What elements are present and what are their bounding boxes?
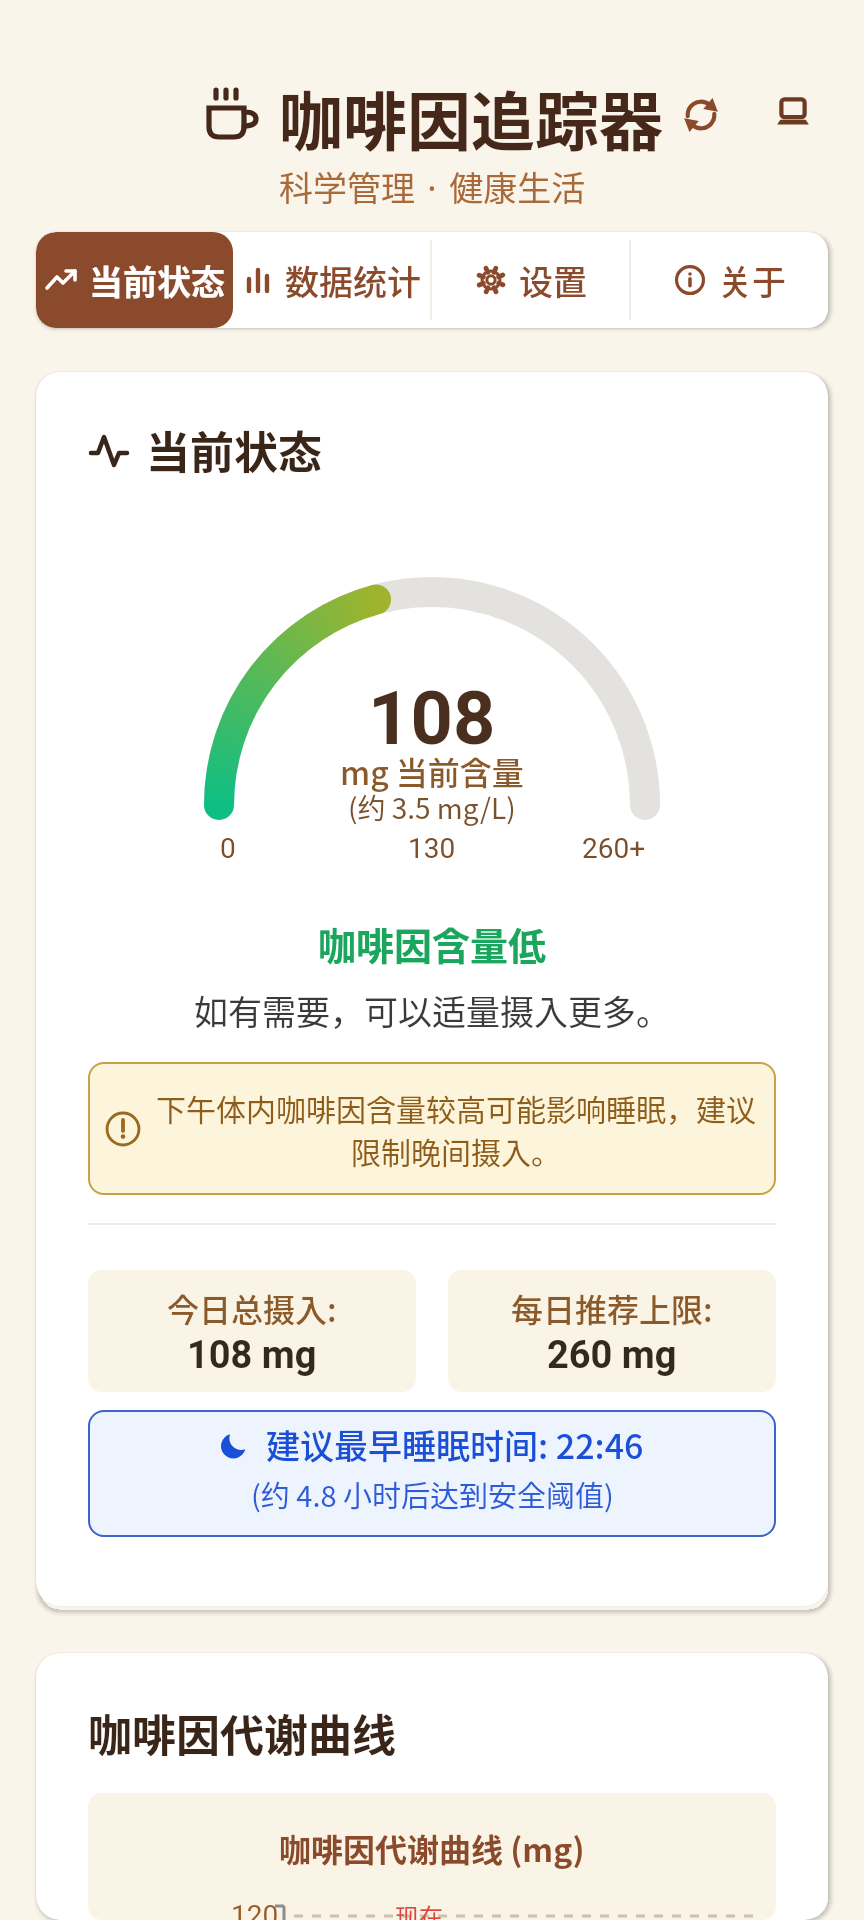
staticText: 关于 xyxy=(718,256,786,305)
staticText: 咖啡因追踪器 xyxy=(279,71,663,145)
staticText: 108 mg xyxy=(187,1333,317,1378)
staticText: 今日总摄入: xyxy=(167,1285,337,1331)
staticText: mg 当前含量 xyxy=(340,748,524,794)
staticText: 260+ xyxy=(582,832,646,865)
staticText: 0 xyxy=(220,832,236,865)
staticText: 如有需要，可以适量摄入更多。 xyxy=(88,986,776,1035)
staticText: 每日推荐上限: xyxy=(511,1285,713,1331)
staticText: 260 mg xyxy=(547,1333,677,1378)
staticText: 当前状态 xyxy=(89,256,225,305)
button[interactable]: 关于 xyxy=(631,232,828,328)
staticText: (约 4.8 小时后达到安全阈值) xyxy=(251,1473,614,1515)
staticText: 咖啡因代谢曲线 (mg) xyxy=(279,1825,585,1871)
staticText: 限制晚间摄入。 xyxy=(351,1129,561,1172)
button[interactable] xyxy=(774,94,812,132)
staticText: 建议最早睡眠时间: 22:46 xyxy=(266,1420,644,1469)
staticText: 108 xyxy=(368,675,496,762)
staticText: 130 xyxy=(408,832,456,865)
staticText: 科学管理 · 健康生活 xyxy=(279,162,586,210)
staticText: (约 3.5 mg/L) xyxy=(348,787,516,828)
staticText: 咖啡因含量低 xyxy=(88,916,776,971)
button[interactable]: 数据统计 xyxy=(233,232,430,328)
staticText: 120 xyxy=(231,1899,279,1920)
staticText: 现在 xyxy=(395,1898,443,1920)
staticText: 当前状态 xyxy=(146,418,322,482)
staticText: 下午体内咖啡因含量较高可能影响睡眠，建议 xyxy=(156,1086,756,1129)
button[interactable] xyxy=(681,95,721,135)
staticText: 咖啡因代谢曲线 xyxy=(88,1701,396,1765)
button[interactable]: 当前状态 xyxy=(36,232,233,328)
staticText: 设置 xyxy=(519,256,587,305)
staticText: 数据统计 xyxy=(285,256,421,305)
button[interactable]: 设置 xyxy=(432,232,629,328)
